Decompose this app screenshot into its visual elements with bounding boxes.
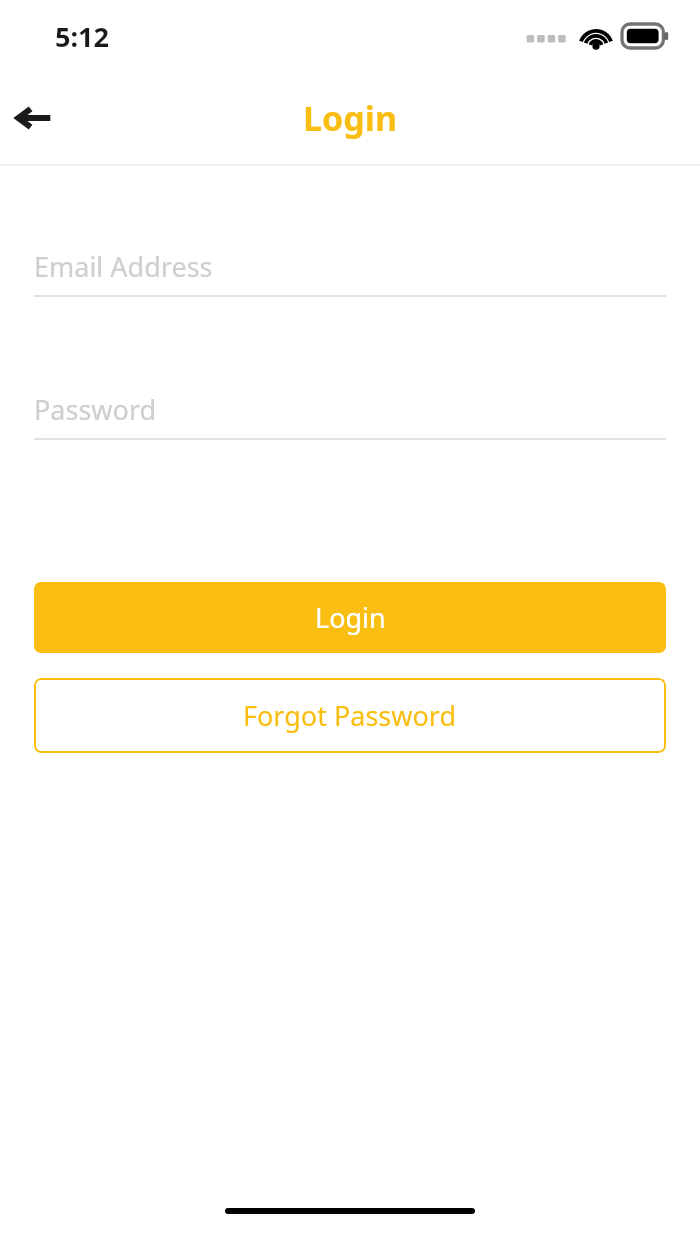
staticText: Login xyxy=(303,95,398,141)
button[interactable]: Forgot Password xyxy=(34,678,666,753)
button[interactable]: Back xyxy=(6,90,62,146)
button[interactable]: Password xyxy=(34,381,666,438)
staticText: Forgot Password xyxy=(243,697,457,734)
staticText: Password xyxy=(34,391,157,428)
staticText: Email Address xyxy=(34,248,213,285)
button[interactable]: Login xyxy=(34,582,666,653)
button[interactable]: Email Address xyxy=(34,238,666,295)
staticText: 5:12 xyxy=(55,18,109,55)
staticText: Login xyxy=(315,599,386,636)
